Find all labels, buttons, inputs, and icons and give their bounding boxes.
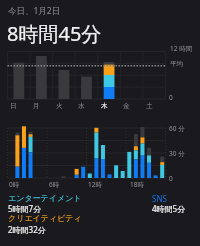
staticText: 30 分 xyxy=(169,149,185,158)
staticText: 60 分 xyxy=(169,124,185,133)
staticText: 水 xyxy=(78,102,85,110)
staticText: 4時間5分 xyxy=(152,203,186,214)
staticText: 0時 xyxy=(9,180,20,189)
staticText: 5時間7分 xyxy=(8,203,42,214)
staticText: 0 xyxy=(169,174,173,183)
staticText: SNS xyxy=(152,193,167,204)
staticText: 今日、1月2日 xyxy=(8,5,61,17)
staticText: クリエイティビティ xyxy=(8,213,82,223)
staticText: 8時間45分 xyxy=(7,20,102,47)
staticText: 金 xyxy=(123,102,130,110)
staticText: 月 xyxy=(33,102,40,110)
staticText: 土 xyxy=(146,102,153,110)
staticText: 2時間32分 xyxy=(8,224,46,235)
staticText: 0 xyxy=(169,93,173,102)
staticText: 18時 xyxy=(130,180,144,189)
staticText: 火 xyxy=(56,102,63,110)
staticText: 12 時間 xyxy=(170,44,193,53)
staticText: 日 xyxy=(10,102,17,110)
staticText: 木 xyxy=(101,102,108,110)
staticText: 12時 xyxy=(88,180,102,189)
staticText: 6時 xyxy=(49,180,60,189)
staticText: エンターテイメント xyxy=(8,193,82,203)
staticText: 平均 xyxy=(170,60,183,68)
